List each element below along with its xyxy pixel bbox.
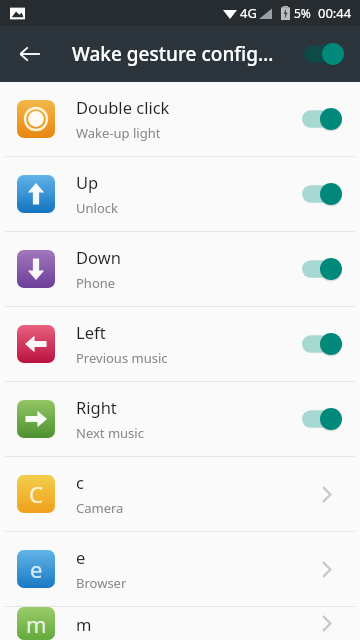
button[interactable]: Right (0, 382, 360, 456)
staticText: 5% (294, 5, 311, 21)
button[interactable]: Left (0, 307, 360, 381)
button[interactable]: Right toggle (298, 395, 346, 443)
staticText: m (76, 613, 92, 635)
staticText: Right (76, 396, 117, 418)
staticText: Unlock (76, 199, 118, 217)
button[interactable]: Double click toggle (298, 95, 346, 143)
button[interactable]: m (0, 607, 360, 640)
button[interactable]: Up (0, 157, 360, 231)
staticText: Camera (76, 499, 124, 517)
staticText: C (29, 479, 43, 509)
button[interactable]: C (0, 457, 360, 531)
staticText: e (76, 546, 86, 568)
button[interactable]: Up toggle (298, 170, 346, 218)
staticText: m (26, 609, 47, 639)
button[interactable]: Back (6, 30, 54, 78)
staticText: e (30, 554, 43, 584)
staticText: Next music (76, 424, 144, 442)
staticText: Browser (76, 574, 127, 592)
staticText: Left (76, 321, 106, 343)
staticText: Phone (76, 274, 116, 292)
button[interactable]: e (0, 532, 360, 606)
staticText: Down (76, 246, 121, 268)
button[interactable]: Left toggle (298, 320, 346, 368)
button[interactable]: Double click (0, 82, 360, 156)
staticText: Wake gesture configu… (72, 41, 284, 67)
staticText: c (76, 471, 84, 493)
staticText: Up (76, 171, 99, 193)
staticText: 00:44 (318, 4, 352, 22)
button[interactable]: Down toggle (298, 245, 346, 293)
staticText: 4G (240, 4, 257, 22)
staticText: Previous music (76, 349, 168, 367)
button[interactable]: Enable wake gestures (296, 34, 352, 74)
button[interactable]: Down (0, 232, 360, 306)
staticText: Wake-up light (76, 124, 161, 142)
staticText: Double click (76, 96, 170, 118)
